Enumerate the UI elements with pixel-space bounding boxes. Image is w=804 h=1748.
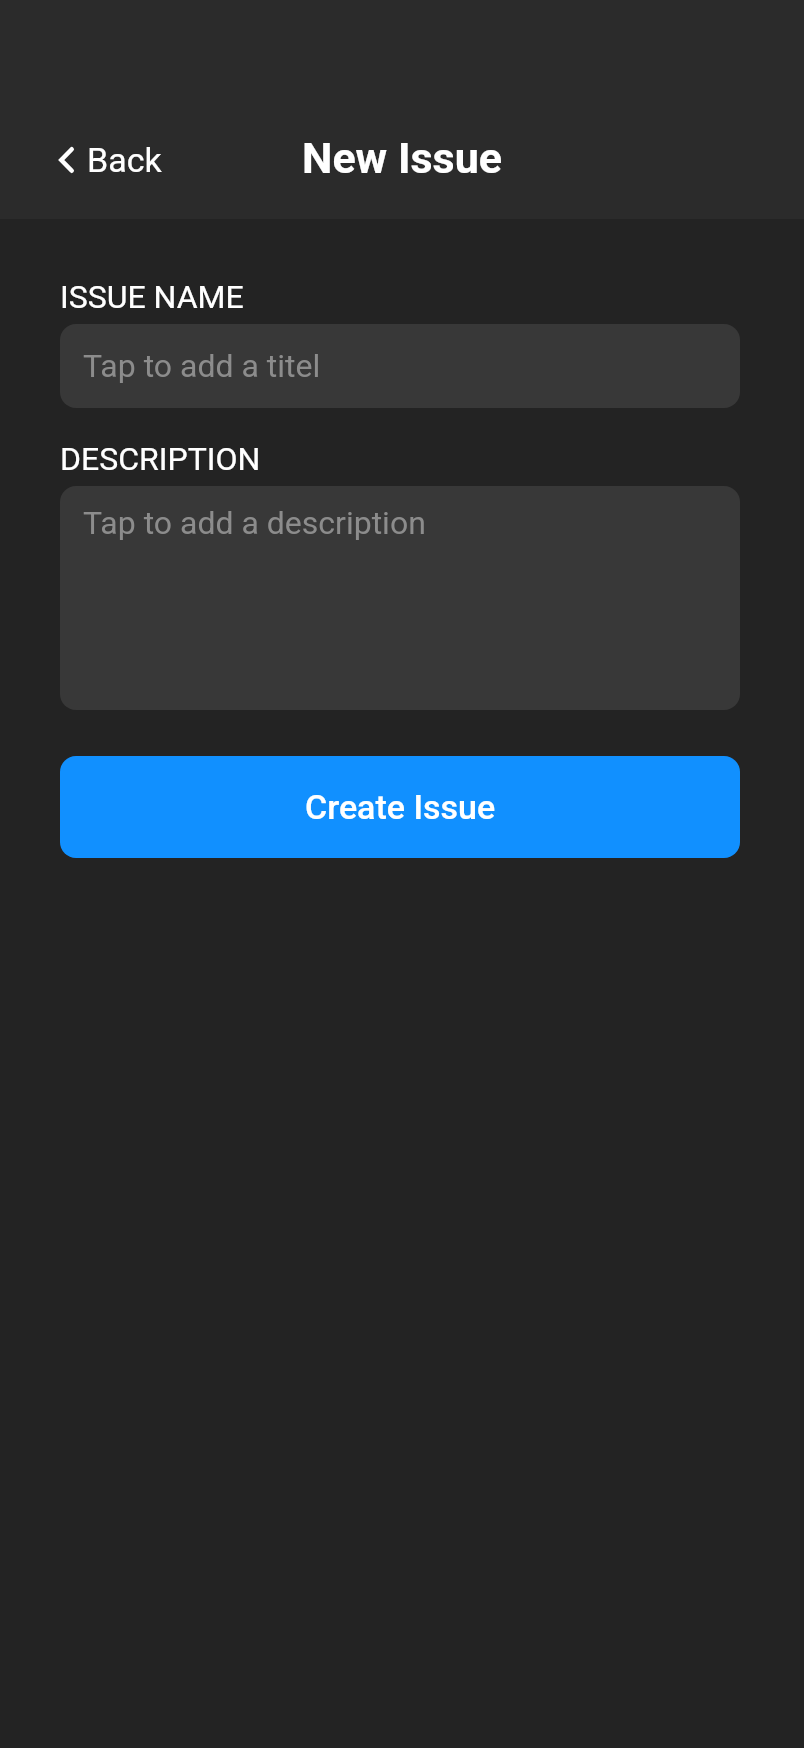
button[interactable]: Back bbox=[45, 130, 172, 190]
staticText: Tap to add a description bbox=[83, 504, 426, 542]
staticText: New Issue bbox=[0, 133, 804, 183]
staticText: DESCRIPTION bbox=[60, 440, 261, 478]
other: Back bbox=[59, 147, 74, 173]
staticText: ISSUE NAME bbox=[60, 278, 244, 316]
button[interactable]: Create Issue bbox=[60, 756, 740, 858]
button[interactable]: Tap to add a description bbox=[60, 486, 740, 710]
staticText: Tap to add a titel bbox=[83, 347, 321, 385]
staticText: Create Issue bbox=[305, 787, 496, 827]
button[interactable]: Tap to add a titel bbox=[60, 324, 740, 408]
staticText: Back bbox=[87, 140, 162, 180]
